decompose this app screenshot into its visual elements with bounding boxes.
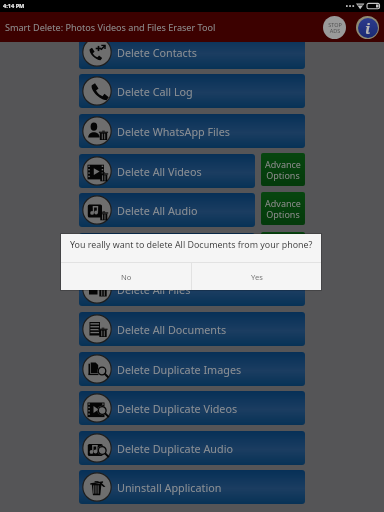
- button[interactable]: Delete Duplicate Videos: [79, 391, 305, 425]
- button[interactable]: Advance Options: [261, 232, 305, 265]
- button[interactable]: Delete All Images: [79, 233, 255, 267]
- button[interactable]: Stop Ads: [323, 16, 346, 39]
- staticText: Delete WhatsApp Files: [117, 124, 230, 139]
- staticText: Delete Duplicate Audio: [117, 441, 233, 456]
- button[interactable]: Delete Duplicate Audio: [79, 431, 305, 465]
- staticText: Advance Options: [265, 237, 301, 260]
- staticText: Advance Options: [265, 197, 301, 220]
- button[interactable]: Delete Contacts: [79, 35, 305, 69]
- button[interactable]: Delete All Videos: [79, 154, 255, 188]
- staticText: Delete Duplicate Videos: [117, 401, 238, 416]
- staticText: Delete All Audio: [117, 203, 198, 218]
- staticText: Delete All Images: [117, 243, 206, 258]
- staticText: Yes: [251, 272, 263, 282]
- staticText: Delete Call Log: [117, 84, 193, 99]
- staticText: Delete All Files: [117, 282, 191, 297]
- staticText: Advance Options: [265, 158, 301, 181]
- staticText: No: [121, 272, 132, 282]
- button[interactable]: Delete WhatsApp Files: [79, 114, 305, 148]
- staticText: Delete All Documents: [117, 322, 227, 337]
- staticText: STOP ADS: [328, 21, 342, 35]
- button[interactable]: Advance Options: [261, 192, 305, 225]
- button[interactable]: Uninstall Application: [79, 470, 305, 504]
- staticText: Delete Duplicate Images: [117, 362, 242, 377]
- staticText: Uninstall Application: [117, 480, 222, 495]
- staticText: Delete All Videos: [117, 164, 202, 179]
- button[interactable]: Info: [356, 16, 379, 39]
- button[interactable]: Delete All Files: [79, 272, 305, 306]
- button[interactable]: Delete All Documents: [79, 312, 305, 346]
- staticText: Smart Delete: Photos Videos and Files Er…: [5, 21, 216, 33]
- button[interactable]: Delete Duplicate Images: [79, 352, 305, 386]
- staticText: You really want to delete All Documents …: [70, 238, 313, 250]
- button[interactable]: Yes: [192, 263, 321, 290]
- staticText: Delete Contacts: [117, 45, 197, 60]
- staticText: 4:14 PM: [3, 2, 25, 10]
- staticText: i: [365, 18, 371, 38]
- button[interactable]: Advance Options: [261, 153, 305, 186]
- button[interactable]: No: [61, 263, 191, 290]
- button[interactable]: Delete All Audio: [79, 193, 255, 227]
- button[interactable]: Delete Call Log: [79, 74, 305, 108]
